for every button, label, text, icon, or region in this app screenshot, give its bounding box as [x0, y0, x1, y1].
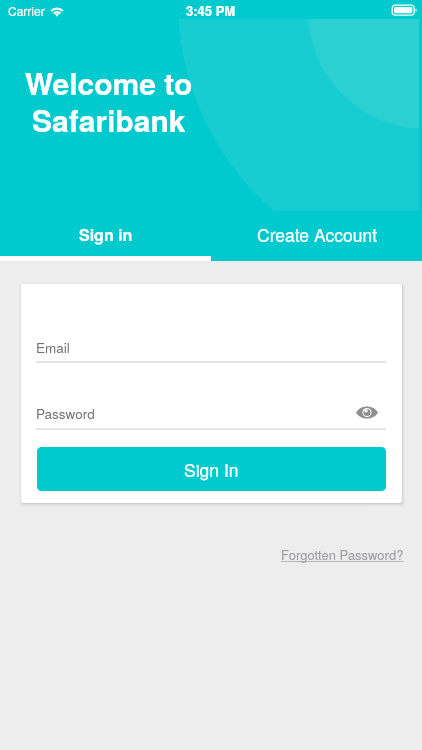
button[interactable]: Sign In	[37, 447, 386, 491]
staticText: Sign in	[79, 223, 133, 246]
staticText: Safaribank	[32, 98, 186, 141]
staticText: Create Account	[257, 222, 377, 247]
button[interactable]: Forgotten Password?	[281, 545, 404, 564]
staticText: 3:45 PM	[186, 1, 236, 20]
staticText: Sign In	[184, 457, 239, 482]
button[interactable]: Create Account	[211, 211, 422, 261]
staticText: Password	[36, 404, 95, 423]
staticText: Carrier	[8, 2, 45, 19]
staticText: Welcome to	[25, 61, 193, 104]
button[interactable]: Sign in	[0, 211, 211, 261]
staticText: Forgotten Password?	[281, 545, 404, 564]
staticText: Email	[36, 338, 70, 357]
button[interactable]: Show password	[352, 398, 381, 426]
